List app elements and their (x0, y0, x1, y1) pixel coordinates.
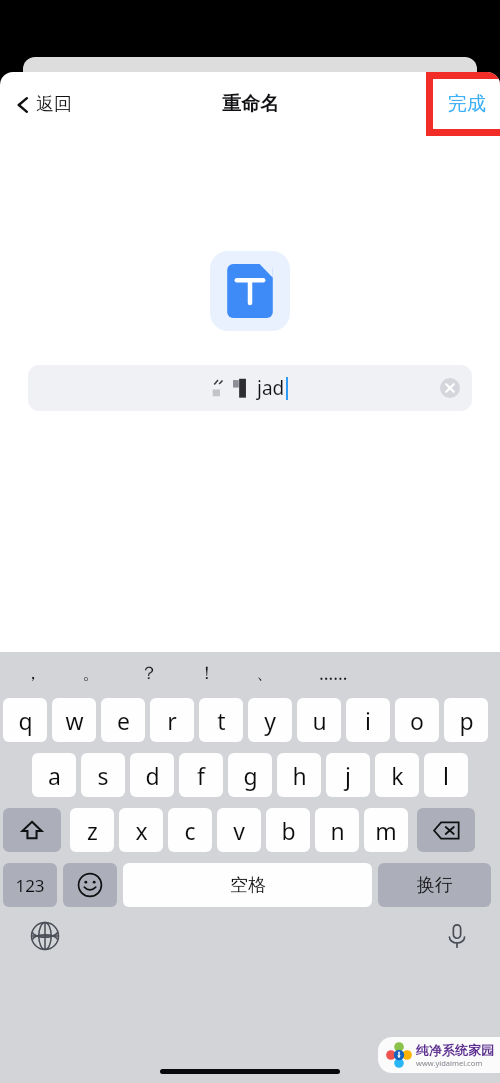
button[interactable]: Shift (3, 808, 61, 852)
staticText: b (281, 815, 296, 846)
button[interactable]: m (364, 808, 408, 852)
staticText: ！ (198, 662, 216, 685)
staticText: j (345, 760, 351, 791)
staticText: m (375, 815, 397, 846)
button[interactable]: ！ (178, 652, 236, 694)
button[interactable]: 语音输入 (438, 917, 476, 955)
button[interactable]: y (248, 698, 292, 742)
staticText: w (65, 705, 84, 736)
button[interactable]: z (70, 808, 114, 852)
button[interactable]: 换行 (378, 863, 491, 907)
staticText: f (197, 760, 205, 791)
button[interactable]: i (346, 698, 390, 742)
button[interactable]: 返回 (12, 87, 76, 122)
staticText: ， (24, 662, 42, 685)
staticText: 纯净系统家园 (416, 1042, 494, 1058)
button[interactable]: 空格 (123, 863, 372, 907)
button[interactable]: f (179, 753, 223, 797)
button[interactable]: o (395, 698, 439, 742)
button[interactable]: w (52, 698, 96, 742)
staticText: 换行 (417, 874, 453, 897)
button[interactable]: 。 (62, 652, 120, 694)
button[interactable]: a (32, 753, 76, 797)
staticText: t (217, 705, 226, 736)
button[interactable]: u (297, 698, 341, 742)
button[interactable]: c (168, 808, 212, 852)
staticText: a (48, 760, 61, 791)
button[interactable]: d (130, 753, 174, 797)
button[interactable]: k (375, 753, 419, 797)
staticText: www.yidaimei.com (416, 1058, 483, 1068)
staticText: g (243, 760, 258, 791)
button[interactable]: 完成 (433, 79, 500, 129)
staticText: y (264, 705, 276, 736)
staticText: k (391, 760, 404, 791)
staticText: 完成 (448, 92, 486, 116)
button[interactable]: s (81, 753, 125, 797)
button[interactable]: j (326, 753, 370, 797)
button[interactable]: p (444, 698, 488, 742)
staticText: p (459, 705, 474, 736)
staticText: 重命名 (222, 92, 279, 116)
button[interactable]: 切换键盘 (26, 917, 64, 955)
staticText: l (443, 760, 449, 791)
button[interactable]: 清除 (440, 378, 460, 398)
staticText: 返回 (36, 93, 72, 116)
button[interactable]: ？ (120, 652, 178, 694)
staticText: jad (257, 375, 285, 401)
staticText: u (312, 705, 327, 736)
staticText: v (233, 815, 245, 846)
button[interactable]: g (228, 753, 272, 797)
staticText: n (330, 815, 345, 846)
staticText: …… (319, 661, 348, 686)
button[interactable]: 123 (3, 863, 57, 907)
staticText: 。 (82, 662, 100, 685)
staticText: o (410, 705, 424, 736)
staticText: 123 (15, 874, 45, 897)
button[interactable]: n (315, 808, 359, 852)
staticText: s (97, 760, 109, 791)
button[interactable]: 、 (236, 652, 294, 694)
button[interactable]: 表情 (63, 863, 117, 907)
button[interactable]: x (119, 808, 163, 852)
staticText: e (117, 705, 130, 736)
staticText: q (18, 705, 33, 736)
staticText: h (292, 760, 307, 791)
button[interactable]: t (199, 698, 243, 742)
button[interactable]: ， (4, 652, 62, 694)
button[interactable]: q (3, 698, 47, 742)
staticText: r (167, 705, 177, 736)
staticText: c (184, 815, 196, 846)
button[interactable]: e (101, 698, 145, 742)
button[interactable]: …… (294, 652, 372, 694)
button[interactable]: r (150, 698, 194, 742)
button[interactable]: jad (28, 365, 472, 411)
staticText: 、 (256, 662, 274, 685)
staticText: d (145, 760, 160, 791)
staticText: 空格 (230, 874, 266, 897)
button[interactable]: Backspace (417, 808, 475, 852)
staticText: ？ (140, 662, 158, 685)
button[interactable]: h (277, 753, 321, 797)
staticText: i (365, 705, 371, 736)
button[interactable]: v (217, 808, 261, 852)
button[interactable]: b (266, 808, 310, 852)
button[interactable]: l (424, 753, 468, 797)
staticText: x (135, 815, 148, 846)
staticText: z (87, 815, 98, 846)
